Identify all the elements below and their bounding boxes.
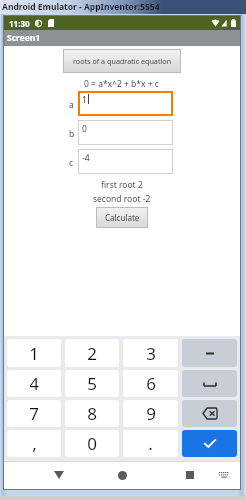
button[interactable]: 9 xyxy=(123,400,178,427)
staticText: b xyxy=(69,128,75,140)
staticText: Calculate xyxy=(105,212,140,223)
button[interactable]: Back xyxy=(44,461,74,489)
staticText: 7 xyxy=(29,402,39,425)
button[interactable]: Recents xyxy=(175,461,205,489)
button[interactable]: . xyxy=(123,430,178,457)
staticText: -4 xyxy=(82,152,90,164)
button[interactable]: Calculate xyxy=(96,207,148,228)
button[interactable]: 1 xyxy=(78,91,173,116)
staticText: 9 xyxy=(146,402,156,425)
staticText: c xyxy=(69,157,74,169)
staticText: a xyxy=(69,99,74,111)
button[interactable]: 0 xyxy=(65,430,119,457)
staticText: 2 xyxy=(87,342,97,365)
staticText: 0 = a*x^2 + b*x + c xyxy=(84,78,159,90)
button[interactable]: 7 xyxy=(7,400,61,427)
button[interactable]: Switch keyboard xyxy=(212,461,236,489)
staticText: 0 xyxy=(87,432,97,455)
staticText: 1 xyxy=(29,342,39,365)
staticText: . xyxy=(148,432,153,455)
button[interactable]: 6 xyxy=(123,370,178,397)
staticText: 11:30 xyxy=(9,18,30,29)
staticText: 8 xyxy=(87,402,97,425)
staticText: second root -2 xyxy=(93,193,151,205)
staticText: 1 xyxy=(82,94,87,106)
staticText: 5 xyxy=(87,372,97,395)
button[interactable]: Space xyxy=(182,370,237,397)
button[interactable]: Enter xyxy=(182,430,237,457)
staticText: 0 xyxy=(82,123,87,135)
staticText: 4 xyxy=(29,372,39,395)
staticText: 6 xyxy=(146,372,156,395)
button[interactable]: , xyxy=(7,430,61,457)
staticText: , xyxy=(32,432,37,455)
button[interactable]: Backspace xyxy=(182,400,237,427)
button[interactable]: 0 xyxy=(78,120,173,145)
button[interactable]: 3 xyxy=(123,339,178,367)
button[interactable]: roots of a quadratic equation xyxy=(63,49,181,73)
button[interactable]: 1 xyxy=(7,339,61,367)
staticText: Screen1 xyxy=(7,32,41,44)
staticText: roots of a quadratic equation xyxy=(73,56,172,66)
button[interactable] xyxy=(182,339,237,367)
staticText: first root 2 xyxy=(101,179,143,191)
button[interactable]: 4 xyxy=(7,370,61,397)
button[interactable]: -4 xyxy=(78,149,173,174)
button[interactable]: 2 xyxy=(65,339,119,367)
button[interactable]: 5 xyxy=(65,370,119,397)
staticText: 3 xyxy=(146,342,156,365)
button[interactable]: 8 xyxy=(65,400,119,427)
button[interactable]: Home xyxy=(107,461,137,489)
staticText: Android Emulator - AppInventor:5554 xyxy=(2,1,160,13)
